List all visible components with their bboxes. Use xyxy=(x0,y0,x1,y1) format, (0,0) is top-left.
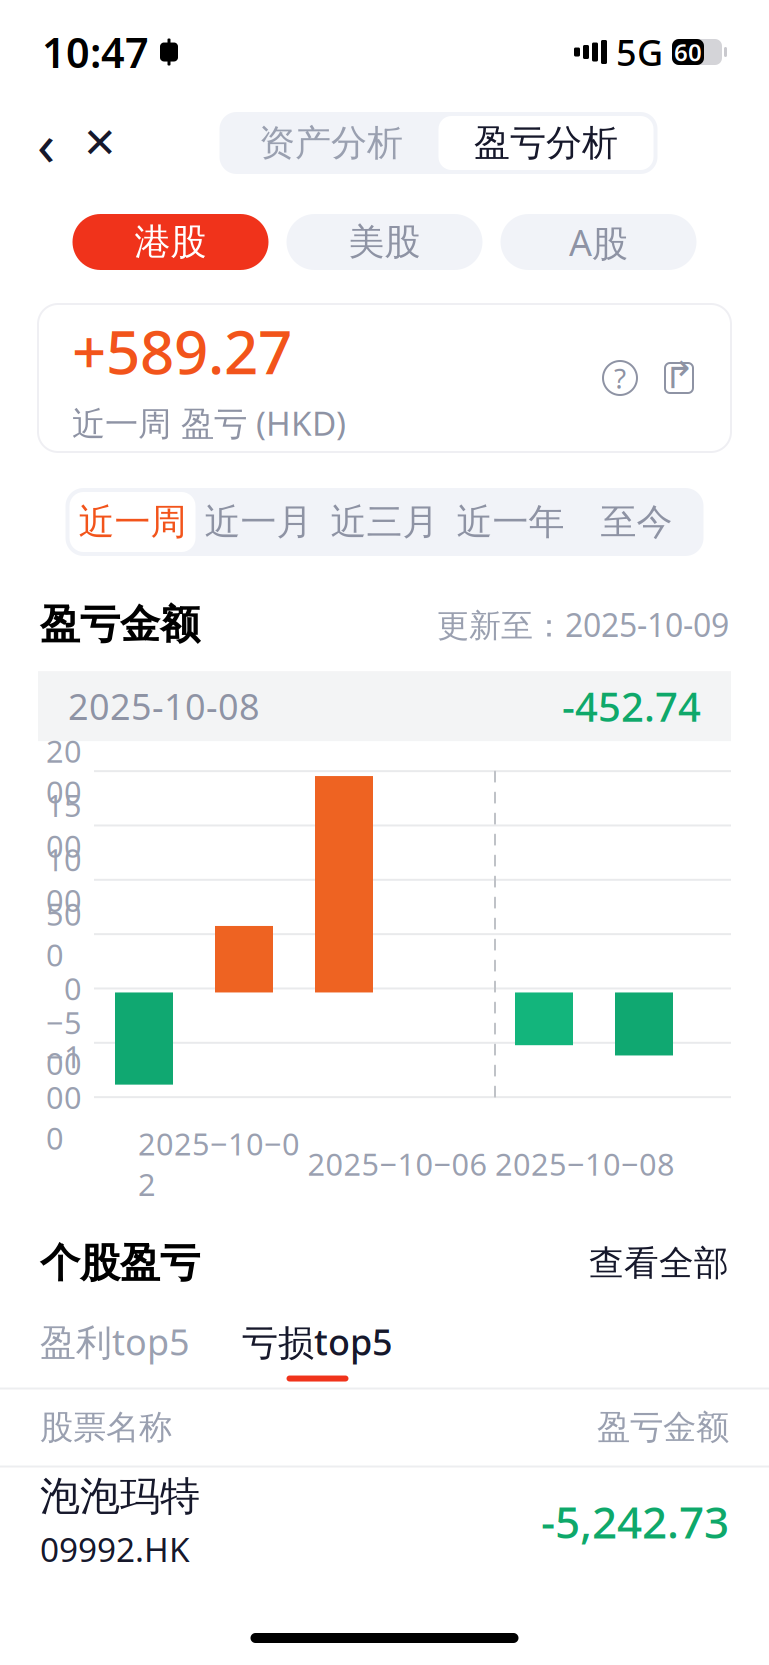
staticText: 查看全部 xyxy=(589,1242,729,1284)
staticText: −500 xyxy=(46,1002,82,1083)
staticText: ✕ xyxy=(82,119,117,166)
button[interactable]: 港股 xyxy=(72,214,268,270)
staticText: 2025−10−08 xyxy=(495,1143,675,1184)
staticText: −1000 xyxy=(46,1036,82,1158)
staticText: 更新至：2025-10-09 xyxy=(437,603,729,646)
button[interactable]: Help xyxy=(603,361,637,395)
staticText: 盈亏分析 xyxy=(474,121,618,165)
staticText: 2025−10−02 xyxy=(138,1123,300,1204)
staticText: 1500 xyxy=(46,785,82,866)
staticText: 股票名称 xyxy=(40,1407,172,1448)
button[interactable]: 至今 xyxy=(573,492,699,552)
staticText: 1000 xyxy=(46,839,82,920)
staticText: 近三月 xyxy=(330,500,438,544)
staticText: 2025−10−06 xyxy=(307,1143,487,1184)
staticText: A股 xyxy=(569,218,628,266)
staticText: 2025-10-08 xyxy=(68,682,260,730)
button[interactable]: Back xyxy=(20,115,72,171)
staticText: 个股盈亏 xyxy=(40,1239,200,1288)
staticText: 盈利top5 xyxy=(40,1318,190,1365)
button[interactable]: 近一月 xyxy=(195,492,321,552)
button[interactable]: 近一年 xyxy=(447,492,573,552)
staticText: 60 xyxy=(674,36,702,68)
staticText: -5,242.73 xyxy=(541,1492,729,1551)
staticText: 0 xyxy=(64,968,82,1009)
staticText: 港股 xyxy=(134,220,206,264)
staticText: 2000 xyxy=(46,730,82,812)
staticText: 泡泡玛特 xyxy=(40,1472,200,1521)
staticText: 资产分析 xyxy=(259,121,403,165)
staticText: -452.74 xyxy=(562,680,701,733)
staticText: 盈亏金额 xyxy=(40,600,200,649)
button[interactable]: 近三月 xyxy=(321,492,447,552)
staticText: 近一年 xyxy=(456,500,564,544)
button[interactable]: 盈利top5 xyxy=(40,1318,190,1381)
staticText: 近一周 盈亏 (HKD) xyxy=(72,401,346,445)
staticText: 至今 xyxy=(600,500,672,544)
staticText: 美股 xyxy=(348,220,420,264)
staticText: 近一周 xyxy=(78,500,186,544)
button[interactable]: 查看全部 xyxy=(589,1242,729,1284)
button[interactable]: 美股 xyxy=(286,214,482,270)
button[interactable]: 资产分析 xyxy=(223,116,438,170)
button[interactable]: 盈亏分析 xyxy=(438,116,653,170)
staticText: 盈亏金额 xyxy=(597,1407,729,1448)
staticText: 近一月 xyxy=(204,500,312,544)
button[interactable]: A股 xyxy=(500,214,696,270)
staticText: ‹ xyxy=(37,104,55,182)
staticText: +589.27 xyxy=(72,311,292,391)
staticText: ↱ xyxy=(663,354,694,396)
staticText: ? xyxy=(614,359,626,397)
staticText: 500 xyxy=(46,893,82,975)
button[interactable]: Close xyxy=(72,115,128,171)
button[interactable]: 近一周 xyxy=(69,492,195,552)
button[interactable]: 亏损top5 xyxy=(242,1318,393,1381)
button[interactable]: 泡泡玛特 xyxy=(0,1467,769,1575)
staticText: 09992.HK xyxy=(40,1527,190,1571)
staticText: 亏损top5 xyxy=(242,1318,393,1365)
button[interactable]: Share xyxy=(661,359,697,397)
staticText: 10:47 xyxy=(42,25,149,79)
staticText: 5G xyxy=(616,28,663,76)
